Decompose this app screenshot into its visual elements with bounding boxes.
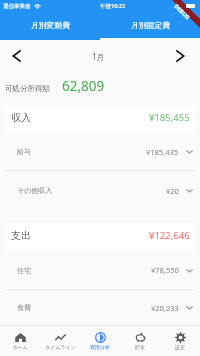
staticText: ¥185,435 — [146, 147, 179, 157]
button[interactable]: タイムライン — [40, 326, 80, 356]
staticText: 午後10:23 — [100, 2, 126, 10]
staticText: 給与 — [17, 147, 31, 156]
button[interactable]: 貯金 — [120, 326, 160, 356]
button[interactable]: 設定 — [160, 326, 200, 356]
staticText: 食費 — [17, 303, 31, 312]
staticText: 収入 — [11, 111, 31, 124]
button[interactable]: 月別変動費 — [0, 12, 100, 40]
staticText: ¥185,455 — [149, 111, 190, 124]
staticText: 62,809 — [62, 77, 105, 95]
staticText: 住宅 — [17, 266, 31, 275]
button[interactable]: 費用分析 — [80, 326, 120, 356]
staticText: タイムライン — [45, 344, 76, 350]
staticText: 1月 — [92, 51, 105, 62]
staticText: ホーム — [12, 344, 28, 350]
staticText: ¥122,646 — [149, 229, 190, 242]
button[interactable]: 給与 — [0, 132, 200, 171]
staticText: 設定 — [175, 344, 185, 350]
button[interactable]: ホーム — [0, 326, 40, 356]
staticText: その他収入 — [17, 186, 53, 195]
button[interactable]: 次の月 — [168, 44, 192, 68]
staticText: 支出 — [11, 229, 31, 242]
staticText: 貯金 — [135, 344, 145, 350]
staticText: 月別変動費 — [31, 20, 70, 30]
staticText: 費用分析 — [90, 344, 110, 350]
button[interactable]: 前の月 — [5, 44, 29, 68]
button[interactable]: その他収入 — [0, 171, 200, 210]
staticText: ¥20,233 — [151, 303, 179, 313]
button[interactable]: 月別固定費 — [100, 12, 200, 40]
staticText: 通信事業者 — [3, 3, 31, 10]
staticText: 月別固定費 — [131, 20, 170, 30]
button[interactable]: 食費 — [0, 290, 200, 325]
staticText: DEBUG — [173, 2, 192, 21]
staticText: ¥78,550 — [151, 265, 179, 275]
staticText: ¥20 — [166, 186, 179, 196]
staticText: 可処分所得額 — [5, 84, 50, 93]
button[interactable]: 住宅 — [0, 250, 200, 290]
